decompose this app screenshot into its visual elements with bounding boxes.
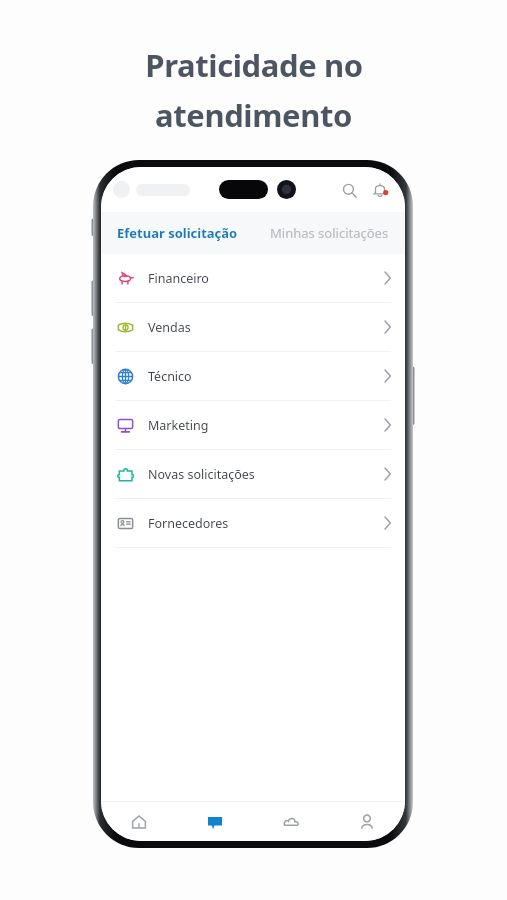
- button[interactable]: Marketing: [101, 401, 405, 449]
- button[interactable]: Vendas: [101, 303, 405, 351]
- button[interactable]: Messages: [177, 802, 253, 841]
- staticText: Marketing: [148, 417, 209, 434]
- staticText: Técnico: [148, 368, 192, 385]
- button[interactable]: Profile: [329, 802, 405, 841]
- button[interactable]: Efetuar solicitação: [101, 212, 253, 254]
- staticText: Minhas solicitações: [270, 224, 389, 242]
- button[interactable]: Novas solicitações: [101, 450, 405, 498]
- button[interactable]: Cloud: [253, 802, 329, 841]
- button[interactable]: Search: [336, 177, 362, 203]
- staticText: Novas solicitações: [148, 466, 255, 483]
- button[interactable]: Notifications: [367, 177, 393, 203]
- staticText: Efetuar solicitação: [117, 224, 238, 242]
- button[interactable]: Financeiro: [101, 254, 405, 302]
- button[interactable]: Home: [101, 802, 177, 841]
- staticText: Fornecedores: [148, 515, 229, 532]
- staticText: Financeiro: [148, 270, 209, 287]
- button[interactable]: Técnico: [101, 352, 405, 400]
- button[interactable]: Fornecedores: [101, 499, 405, 547]
- staticText: Praticidade no: [145, 44, 363, 86]
- staticText: Vendas: [148, 319, 191, 336]
- staticText: atendimento: [155, 94, 352, 136]
- button[interactable]: Minhas solicitações: [253, 212, 405, 254]
